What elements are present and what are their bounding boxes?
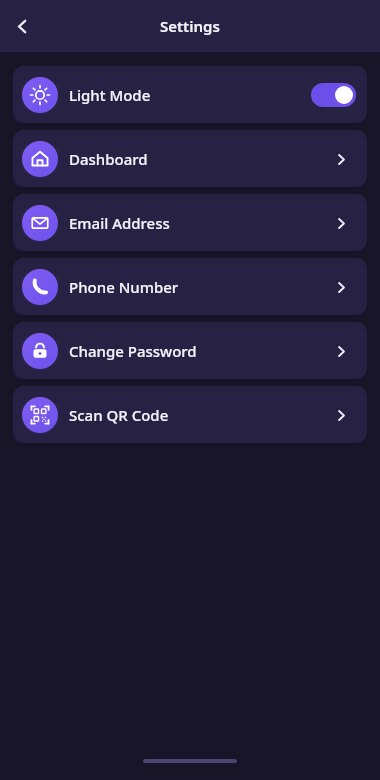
staticText: Email Address [69, 213, 170, 233]
button[interactable]: Scan QR Code [13, 386, 367, 443]
staticText: Dashboard [69, 149, 148, 169]
button[interactable]: Change Password [13, 322, 367, 379]
staticText: Scan QR Code [69, 405, 169, 425]
staticText: Light Mode [69, 85, 151, 105]
button[interactable]: Email Address [13, 194, 367, 251]
staticText: Settings [160, 16, 220, 36]
button[interactable]: Back [4, 8, 40, 44]
button[interactable]: Dashboard [13, 130, 367, 187]
button[interactable]: Light Mode [13, 66, 367, 123]
button[interactable]: Phone Number [13, 258, 367, 315]
button[interactable]: Light Mode [311, 83, 356, 107]
staticText: Change Password [69, 341, 197, 361]
staticText: Phone Number [69, 277, 179, 297]
